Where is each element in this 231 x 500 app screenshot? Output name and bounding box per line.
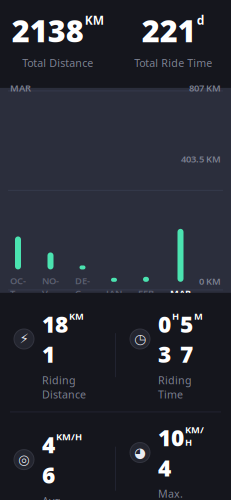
- staticText: FEB: [138, 287, 154, 299]
- staticText: KM/H: [185, 423, 204, 448]
- staticText: 181: [42, 309, 68, 369]
- staticText: 0 KM: [199, 275, 221, 287]
- staticText: 403.5 KM: [181, 153, 221, 165]
- staticText: ◷: [134, 331, 146, 346]
- staticText: KM/H: [56, 430, 82, 443]
- staticText: DEC: [75, 274, 90, 299]
- staticText: ⚡︎: [19, 331, 28, 346]
- staticText: Max. Speed: [158, 487, 190, 500]
- staticText: MAR: [10, 82, 31, 94]
- staticText: MAR: [170, 287, 191, 299]
- button[interactable]: ◎: [0, 419, 115, 500]
- button[interactable]: ◷: [116, 299, 231, 411]
- staticText: Avg.: [42, 494, 64, 500]
- staticText: 221: [142, 10, 196, 51]
- staticText: 46: [42, 429, 55, 490]
- staticText: H: [172, 310, 179, 322]
- staticText: KM: [69, 310, 84, 322]
- button[interactable]: ◕: [116, 412, 231, 500]
- staticText: ◕: [134, 445, 146, 460]
- button[interactable]: ⚡︎: [0, 299, 115, 411]
- staticText: OCT: [10, 274, 26, 299]
- staticText: Riding Time: [158, 373, 192, 401]
- staticText: 807 KM: [189, 82, 221, 94]
- staticText: JAN: [106, 287, 122, 299]
- staticText: KM: [85, 12, 104, 28]
- staticText: 03: [158, 309, 171, 369]
- staticText: M: [194, 310, 203, 322]
- staticText: Total Ride Time: [134, 56, 212, 70]
- staticText: Total Distance: [22, 56, 93, 70]
- staticText: d: [197, 12, 205, 28]
- staticText: NOV: [42, 274, 59, 299]
- staticText: 104: [158, 422, 184, 483]
- staticText: Riding Distance: [42, 373, 86, 401]
- staticText: 2138: [12, 10, 84, 51]
- staticText: ◎: [18, 452, 30, 467]
- staticText: 57: [180, 309, 193, 369]
